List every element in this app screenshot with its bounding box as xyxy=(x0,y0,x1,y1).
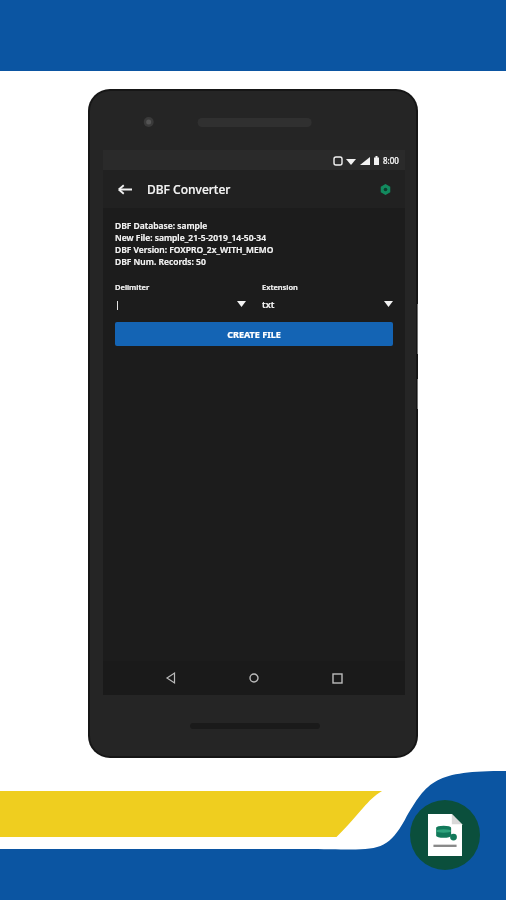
staticText: New File: sample_21-5-2019_14-50-34 xyxy=(115,232,267,244)
staticText: Delimiter xyxy=(115,282,150,292)
button[interactable]: Extension xyxy=(262,282,393,312)
staticText: 8:00 xyxy=(383,155,399,166)
staticText: DBF Database: sample xyxy=(115,220,208,232)
button[interactable]: Delimiter xyxy=(115,282,246,312)
button[interactable]: DBF Convert app icon xyxy=(410,800,480,870)
staticText: | xyxy=(115,298,237,310)
button[interactable]: App action xyxy=(373,177,397,201)
button[interactable]: Home xyxy=(239,663,269,693)
staticText: CREATE FILE xyxy=(227,328,281,340)
staticText: txt xyxy=(262,298,384,310)
staticText: DBF Num. Records: 50 xyxy=(115,256,206,268)
button[interactable]: CREATE FILE xyxy=(115,322,393,346)
button[interactable]: Back xyxy=(156,663,186,693)
button[interactable]: Back xyxy=(109,174,139,204)
staticText: DBF Converter xyxy=(147,181,231,197)
staticText: Extension xyxy=(262,282,298,292)
button[interactable]: Recents xyxy=(322,663,352,693)
staticText: DBF Version: FOXPRO_2x_WITH_MEMO xyxy=(115,244,274,256)
